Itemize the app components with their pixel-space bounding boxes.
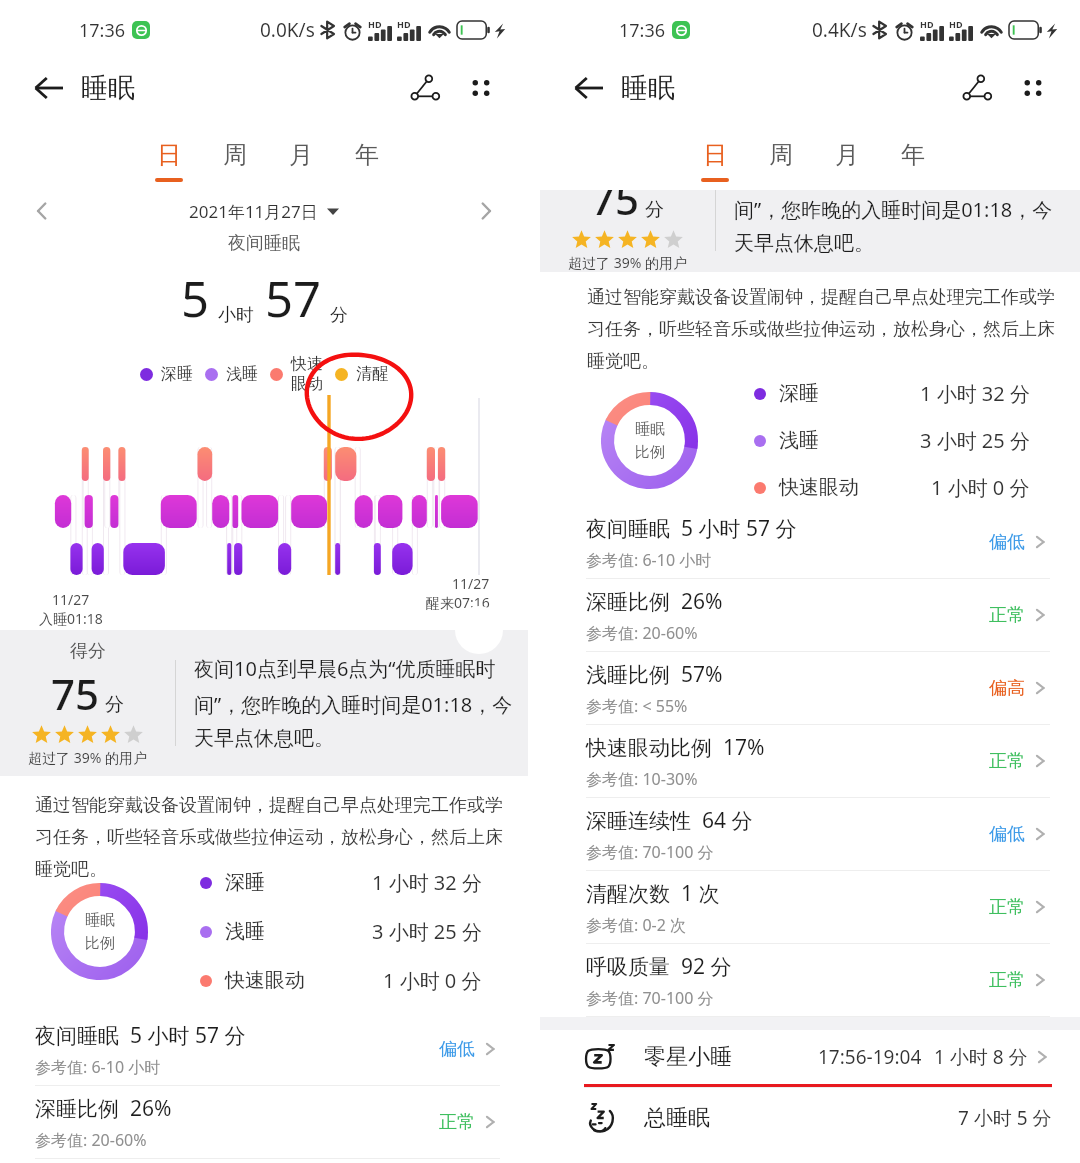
staticText: 日	[703, 140, 727, 170]
button[interactable]: Share	[400, 63, 450, 113]
staticText: 快速	[291, 354, 323, 374]
button[interactable]: More options	[456, 63, 506, 113]
button[interactable]: 深睡连续性	[540, 798, 1080, 871]
staticText: 7 小时 5 分	[958, 1105, 1052, 1131]
staticText: 偏低	[989, 823, 1025, 846]
staticText: 浅睡	[226, 364, 258, 384]
staticText: HD	[949, 18, 963, 30]
button[interactable]: 夜间睡眠	[0, 1013, 528, 1086]
staticText: 5 小时 57 分	[681, 514, 797, 543]
button[interactable]: 清醒次数	[540, 871, 1080, 944]
staticText: HD	[397, 18, 411, 30]
staticText: 睡眠	[635, 420, 665, 439]
staticText: 比例	[85, 934, 115, 953]
button[interactable]: Back	[566, 65, 612, 111]
button[interactable]: 周	[748, 132, 814, 190]
staticText: 1 小时 0 分	[383, 967, 482, 994]
staticText: 睡眠	[85, 911, 115, 930]
staticText: 夜间10点到早晨6点为“优质睡眠时间”，您昨晚的入睡时间是01:18，今天早点休…	[194, 655, 514, 751]
staticText: 17:36	[79, 18, 126, 43]
staticText: 小时	[218, 304, 254, 327]
button[interactable]: 总睡眠	[540, 1088, 1080, 1148]
staticText: 通过智能穿戴设备设置闹钟，提醒自己早点处理完工作或学习任务，听些轻音乐或做些拉伸…	[35, 794, 518, 880]
staticText: 正常	[439, 1111, 475, 1134]
staticText: 参考值: 6-10 小时	[586, 549, 712, 571]
staticText: 年	[901, 140, 925, 170]
staticText: 睡眠	[621, 71, 675, 105]
staticText: 浅睡	[779, 428, 819, 453]
staticText: 睡眠	[81, 71, 135, 105]
staticText: 深睡连续性	[586, 808, 691, 834]
staticText: 快速眼动比例	[586, 735, 712, 761]
staticText: 夜间睡眠	[586, 516, 670, 542]
button[interactable]: 2021年11月27日	[189, 200, 339, 223]
staticText: 57%	[681, 660, 723, 689]
staticText: 深睡	[779, 381, 819, 406]
button[interactable]: 月	[268, 132, 334, 190]
staticText: 醒来07:16	[426, 593, 490, 612]
staticText: 0.4K/s	[812, 17, 867, 43]
staticText: 1 小时 32 分	[920, 380, 1030, 407]
staticText: 1 次	[681, 879, 720, 908]
staticText: 正常	[989, 604, 1025, 627]
staticText: 75	[51, 665, 100, 722]
staticText: 分	[105, 693, 124, 717]
staticText: 参考值: 6-10 小时	[35, 1056, 161, 1078]
button[interactable]: 周	[202, 132, 268, 190]
staticText: 参考值: 0-2 次	[586, 914, 687, 936]
staticText: HD	[920, 18, 934, 30]
staticText: 偏低	[439, 1038, 475, 1061]
staticText: 参考值: 20-60%	[35, 1129, 147, 1151]
staticText: 75	[591, 190, 640, 227]
button[interactable]: 年	[334, 132, 400, 190]
button[interactable]: 夜间睡眠	[540, 506, 1080, 579]
button[interactable]: 年	[880, 132, 946, 190]
button[interactable]: Next day	[466, 191, 506, 231]
staticText: 2021年11月27日	[189, 200, 318, 223]
staticText: 浅睡比例	[586, 662, 670, 688]
staticText: 参考值: 10-30%	[586, 768, 698, 790]
staticText: 17%	[723, 733, 765, 762]
staticText: 月	[835, 140, 859, 170]
button[interactable]: 快速眼动比例	[540, 725, 1080, 798]
staticText: 参考值: 70-100 分	[586, 841, 714, 863]
staticText: 总睡眠	[644, 1104, 710, 1132]
staticText: 17:56-19:04	[818, 1044, 922, 1070]
staticText: 参考值: < 55%	[586, 695, 688, 717]
staticText: 3 小时 25 分	[372, 918, 482, 945]
staticText: 26%	[681, 587, 723, 616]
button[interactable]: 深睡比例	[0, 1086, 528, 1159]
staticText: 入睡01:18	[39, 609, 103, 628]
button[interactable]: Previous day	[22, 191, 62, 231]
staticText: 深睡比例	[35, 1096, 119, 1122]
staticText: 快速眼动	[779, 475, 859, 500]
staticText: 3 小时 25 分	[920, 427, 1030, 454]
button[interactable]: Back	[26, 65, 72, 111]
staticText: 夜间睡眠	[35, 1023, 119, 1049]
button[interactable]: 浅睡比例	[540, 652, 1080, 725]
staticText: 偏高	[989, 677, 1025, 700]
staticText: 参考值: 70-100 分	[586, 987, 714, 1009]
staticText: 清醒	[356, 364, 388, 384]
staticText: 年	[355, 140, 379, 170]
staticText: 正常	[989, 969, 1025, 992]
button[interactable]: 零星小睡	[540, 1030, 1080, 1084]
staticText: 分	[645, 198, 664, 222]
staticText: 超过了 39% 的用户	[568, 253, 687, 272]
button[interactable]: 日	[682, 132, 748, 190]
button[interactable]: 呼吸质量	[540, 944, 1080, 1017]
staticText: 1 小时 0 分	[931, 474, 1030, 501]
staticText: 通过智能穿戴设备设置闹钟，提醒自己早点处理完工作或学习任务，听些轻音乐或做些拉伸…	[587, 286, 1061, 372]
staticText: 92 分	[681, 952, 732, 981]
button[interactable]: Share	[952, 63, 1002, 113]
staticText: 周	[769, 140, 793, 170]
button[interactable]: 日	[136, 132, 202, 190]
staticText: 64 分	[702, 806, 753, 835]
button[interactable]: More options	[1008, 63, 1058, 113]
button[interactable]: 深睡比例	[540, 579, 1080, 652]
button[interactable]: 月	[814, 132, 880, 190]
staticText: 快速眼动	[225, 968, 305, 993]
staticText: 日	[157, 140, 181, 170]
staticText: 呼吸质量	[586, 954, 670, 980]
staticText: 超过了 39% 的用户	[28, 748, 147, 767]
